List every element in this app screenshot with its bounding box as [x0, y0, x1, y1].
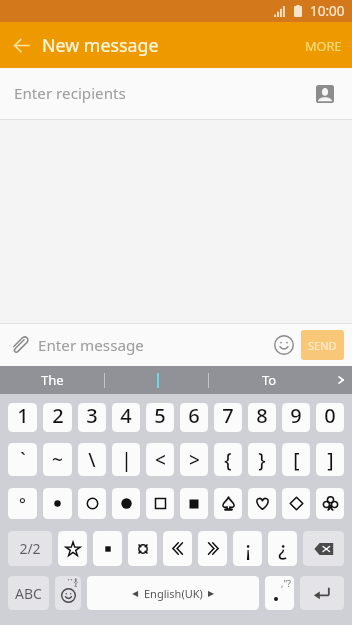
staticText: 3	[86, 403, 98, 429]
button[interactable]: 7	[214, 403, 242, 432]
staticText: {	[224, 447, 232, 473]
staticText: 4	[120, 403, 132, 429]
staticText: ▶	[208, 589, 215, 598]
staticText: ¡	[245, 536, 251, 562]
button[interactable]: 2	[43, 403, 72, 432]
button[interactable]: Attach	[0, 326, 38, 364]
button[interactable]: Back	[0, 24, 42, 66]
staticText: ,"?	[281, 577, 291, 589]
button[interactable]: <	[146, 443, 174, 476]
button[interactable]: Emoji keyboard	[55, 576, 81, 610]
button[interactable]: The	[0, 366, 104, 394]
button[interactable]: 1	[8, 403, 37, 432]
button[interactable]: ¡	[233, 531, 262, 566]
button[interactable]	[163, 531, 192, 566]
button[interactable]: 3	[78, 403, 106, 432]
button[interactable]: `	[8, 443, 37, 476]
button[interactable]	[93, 531, 122, 566]
staticText: <	[155, 447, 166, 473]
staticText: °	[19, 493, 26, 515]
staticText: 5	[154, 403, 166, 429]
button[interactable]: To	[209, 366, 330, 394]
button[interactable]	[214, 488, 242, 519]
button[interactable]: {	[214, 443, 242, 476]
button[interactable]: ~	[43, 443, 72, 476]
button[interactable]	[180, 488, 208, 519]
staticText: 10:00	[310, 2, 345, 20]
button[interactable]: 5	[146, 403, 174, 432]
staticText: 7	[222, 403, 234, 429]
staticText: 0	[324, 403, 336, 429]
staticText: 2	[52, 403, 64, 429]
staticText: English(UK)	[144, 586, 203, 601]
staticText: ABC	[15, 584, 42, 603]
button[interactable]	[198, 531, 227, 566]
button[interactable]	[248, 488, 276, 519]
staticText: >	[189, 447, 200, 473]
staticText: Enter recipients	[14, 83, 126, 104]
button[interactable]: Emoji	[267, 328, 301, 362]
staticText: 6	[188, 403, 200, 429]
button[interactable]: \	[78, 443, 106, 476]
button[interactable]	[146, 488, 174, 519]
button[interactable]: ¿	[268, 531, 297, 566]
button[interactable]	[316, 488, 344, 519]
button[interactable]: 6	[180, 403, 208, 432]
button[interactable]: Add contact	[313, 82, 337, 106]
staticText: |	[121, 447, 132, 473]
staticText: The	[41, 371, 64, 389]
button[interactable]: MORE	[295, 22, 352, 68]
staticText: ◀	[132, 589, 139, 598]
staticText: To	[262, 371, 277, 389]
staticText: [	[293, 447, 300, 473]
button[interactable]: ]	[316, 443, 344, 476]
staticText: 1	[17, 403, 29, 429]
button[interactable]	[58, 531, 87, 566]
button[interactable]	[43, 488, 72, 519]
button[interactable]: >	[180, 443, 208, 476]
button[interactable]: [	[282, 443, 310, 476]
staticText: MORE	[305, 37, 342, 54]
staticText: Enter message	[38, 335, 144, 356]
staticText: ~	[52, 447, 63, 473]
button[interactable]: Enter	[300, 576, 344, 610]
staticText: ¿	[278, 536, 287, 562]
button[interactable]: 2/2	[8, 531, 52, 566]
staticText: 9	[290, 403, 302, 429]
staticText: ]	[327, 447, 334, 473]
button[interactable]: |	[112, 443, 140, 476]
button[interactable]: 9	[282, 403, 310, 432]
button[interactable]: ◀	[87, 576, 259, 610]
button[interactable]	[128, 531, 157, 566]
button[interactable]: ABC	[8, 576, 49, 610]
staticText: 2/2	[19, 539, 41, 558]
button[interactable]: °	[8, 488, 37, 519]
button[interactable]	[112, 488, 140, 519]
button[interactable]: More suggestions	[330, 366, 352, 394]
staticText: }	[258, 447, 266, 473]
button[interactable]: 4	[112, 403, 140, 432]
staticText: 8	[256, 403, 268, 429]
staticText: \	[88, 447, 96, 473]
button[interactable]	[78, 488, 106, 519]
button[interactable]: 0	[316, 403, 344, 432]
staticText: `	[20, 447, 26, 473]
staticText: New message	[42, 33, 159, 57]
button[interactable]: ,"?	[265, 576, 294, 610]
button[interactable]: SEND	[301, 330, 344, 360]
staticText: SEND	[308, 338, 337, 353]
button[interactable]: }	[248, 443, 276, 476]
button[interactable]: Backspace	[303, 531, 344, 566]
button[interactable]: 8	[248, 403, 276, 432]
button[interactable]	[282, 488, 310, 519]
